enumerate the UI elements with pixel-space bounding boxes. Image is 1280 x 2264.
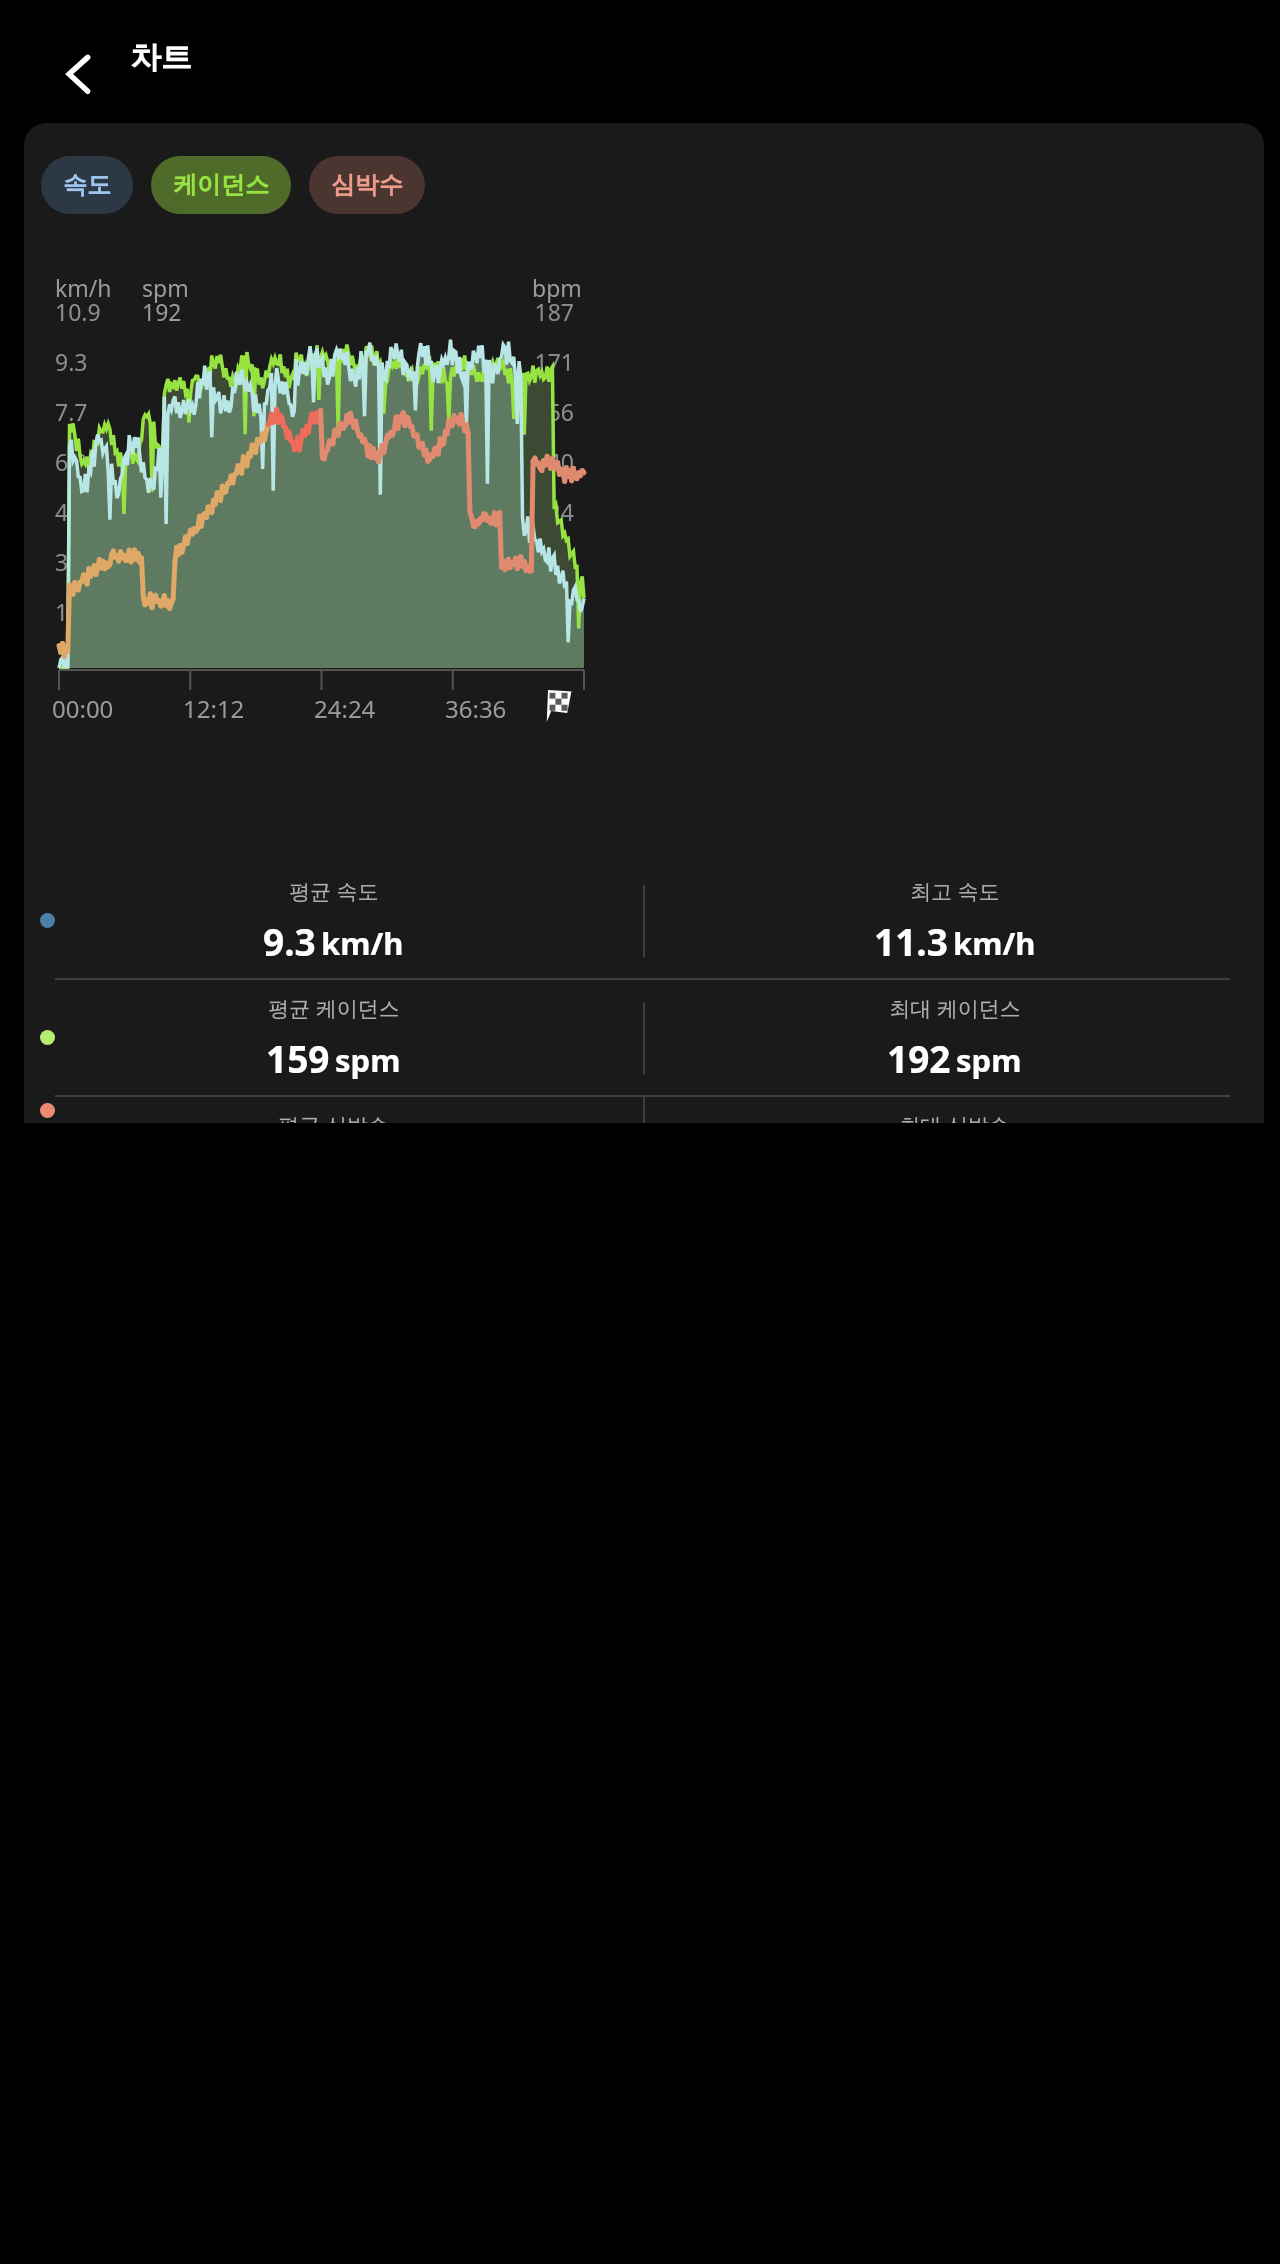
button[interactable]: 평균 속도	[24, 863, 1264, 978]
button[interactable]: Back	[48, 42, 112, 106]
staticText: 평균 속도	[289, 877, 379, 906]
staticText: 00:00	[52, 692, 114, 725]
staticText: 평균 케이던스	[268, 994, 400, 1023]
staticText: km/h	[953, 922, 1036, 964]
staticText: km/h	[321, 922, 404, 964]
staticText: 10.9	[55, 296, 101, 327]
staticText: 192	[142, 296, 182, 327]
staticText: 11.3	[874, 916, 948, 966]
staticText: bpm	[532, 272, 582, 303]
button[interactable]: 평균 심박수	[24, 1097, 1264, 1123]
staticText: 92	[524, 596, 574, 627]
button[interactable]: 심박수	[309, 156, 425, 214]
staticText: 6.2	[55, 446, 88, 477]
other: Finish	[541, 690, 573, 722]
staticText: 140	[524, 446, 574, 477]
staticText: 156	[524, 396, 574, 427]
staticText: spm	[335, 1039, 401, 1081]
staticText: 평균 심박수	[278, 1111, 389, 1123]
staticText: 1.5	[55, 596, 88, 627]
staticText: 3.1	[55, 546, 88, 577]
staticText: 7.7	[55, 396, 88, 427]
staticText: 108	[524, 546, 574, 577]
staticText: 187	[524, 296, 574, 327]
staticText: 24:24	[314, 692, 376, 725]
button[interactable]: 속도	[41, 156, 133, 214]
button[interactable]: 평균 케이던스	[24, 980, 1264, 1095]
staticText: km/h	[55, 272, 112, 303]
staticText: 속도	[63, 170, 111, 200]
staticText: 192	[887, 1033, 951, 1083]
staticText: 9.3	[55, 346, 88, 377]
staticText: 124	[524, 496, 574, 527]
staticText: 심박수	[331, 170, 403, 200]
staticText: 4.6	[55, 496, 88, 527]
staticText: 9.3	[263, 916, 316, 966]
staticText: spm	[142, 272, 189, 303]
staticText: 최대 케이던스	[889, 994, 1021, 1023]
staticText: spm	[956, 1039, 1022, 1081]
staticText: 171	[524, 346, 574, 377]
staticText: 최대 심박수	[899, 1111, 1010, 1123]
button[interactable]: 케이던스	[151, 156, 291, 214]
staticText: 12:12	[183, 692, 245, 725]
staticText: 최고 속도	[910, 877, 1000, 906]
staticText: 차트	[130, 38, 192, 77]
staticText: 케이던스	[173, 170, 269, 200]
staticText: 36:36	[445, 692, 507, 725]
staticText: 159	[266, 1033, 330, 1083]
